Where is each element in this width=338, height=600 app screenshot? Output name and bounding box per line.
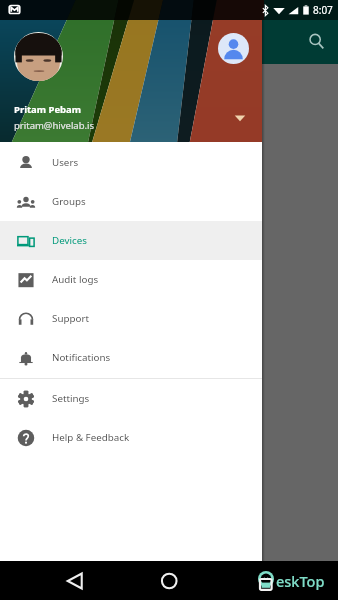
staticText: Groups: [52, 195, 86, 208]
button[interactable]: Groups: [0, 182, 262, 221]
staticText: Audit logs: [52, 273, 99, 286]
button[interactable]: Expand accounts: [234, 112, 246, 124]
staticText: Notifications: [52, 351, 111, 364]
staticText: Devices: [52, 234, 87, 247]
staticText: Pritam Pebam: [14, 103, 82, 116]
button[interactable]: Home: [156, 569, 183, 593]
button[interactable]: Devices: [0, 221, 262, 260]
button[interactable]: Users: [0, 143, 262, 182]
staticText: Support: [52, 312, 89, 325]
button[interactable]: Back: [61, 569, 89, 593]
button[interactable]: Switch account: [218, 33, 249, 64]
button[interactable]: Help & Feedback: [0, 418, 262, 457]
button[interactable]: Notifications: [0, 338, 262, 377]
button[interactable]: Audit logs: [0, 260, 262, 299]
button[interactable]: Profile photo: [14, 32, 63, 81]
staticText: Users: [52, 156, 79, 169]
staticText: Help & Feedback: [52, 431, 130, 444]
staticText: Settings: [52, 392, 90, 405]
button[interactable]: Search: [308, 33, 325, 50]
button[interactable]: Support: [0, 299, 262, 338]
button[interactable]: Settings: [0, 379, 262, 418]
staticText: pritam@hivelab.is: [14, 119, 95, 132]
staticText: eskTop: [276, 571, 325, 591]
staticText: 8:07: [313, 3, 333, 17]
